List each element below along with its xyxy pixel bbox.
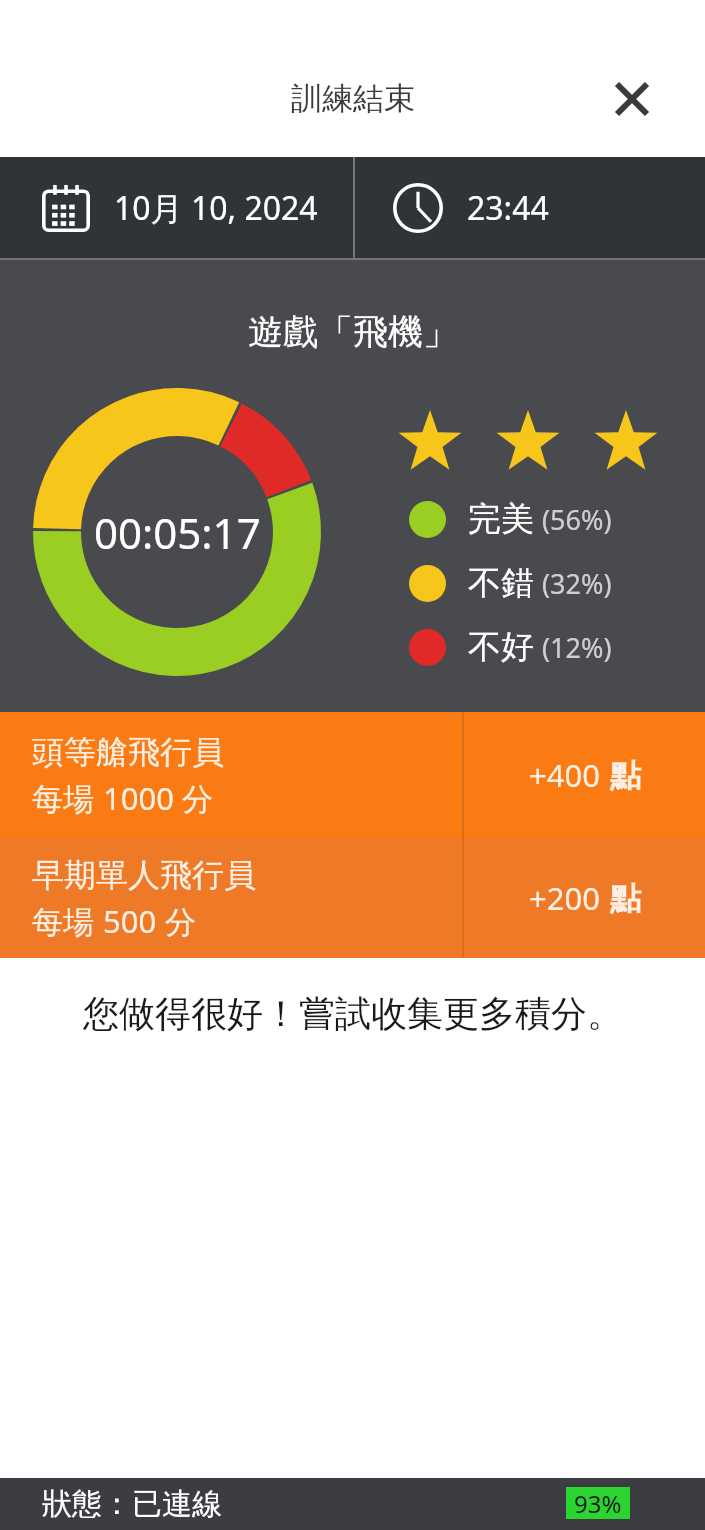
staticText: 每場 — [32, 900, 103, 942]
staticText: 10月 10, 2024 — [114, 186, 318, 230]
staticText: 1000 — [103, 777, 174, 819]
staticText: 分 — [157, 900, 197, 942]
staticText: +400 — [529, 754, 600, 796]
button[interactable]: 不錯 — [409, 562, 612, 604]
staticText: 狀態：已連線 — [42, 1485, 222, 1523]
button[interactable]: 完美 — [409, 498, 612, 540]
staticText: 分 — [174, 777, 214, 819]
staticText: 不錯 — [468, 562, 534, 604]
staticText: (56%) — [542, 501, 612, 538]
staticText: 早期單人飛行員 — [32, 855, 256, 895]
button[interactable]: 10月 10, 2024 — [0, 157, 353, 258]
staticText: 遊戲「飛機」 — [248, 310, 458, 354]
staticText: 500 — [103, 900, 157, 942]
button[interactable]: 不好 — [409, 626, 612, 668]
staticText: 您做得很好！嘗試收集更多積分。 — [83, 991, 623, 1036]
staticText: 23:44 — [467, 186, 549, 230]
staticText: 93% — [574, 1487, 622, 1519]
staticText: +200 — [529, 877, 600, 919]
staticText: 完美 — [468, 498, 534, 540]
staticText: 00:05:17 — [94, 504, 261, 561]
staticText: (32%) — [542, 565, 612, 602]
staticText: 每場 — [32, 777, 103, 819]
button[interactable]: 頭等艙飛行員 — [0, 712, 705, 838]
staticText: (12%) — [542, 629, 612, 666]
staticText: 點 — [610, 756, 641, 795]
staticText: 不好 — [468, 626, 534, 668]
button[interactable]: Close — [603, 70, 661, 128]
staticText: 訓練結束 — [291, 79, 415, 118]
button[interactable]: 早期單人飛行員 — [0, 838, 705, 958]
staticText: 點 — [610, 879, 641, 918]
staticText: 頭等艙飛行員 — [32, 732, 224, 772]
button[interactable]: 23:44 — [355, 157, 705, 258]
